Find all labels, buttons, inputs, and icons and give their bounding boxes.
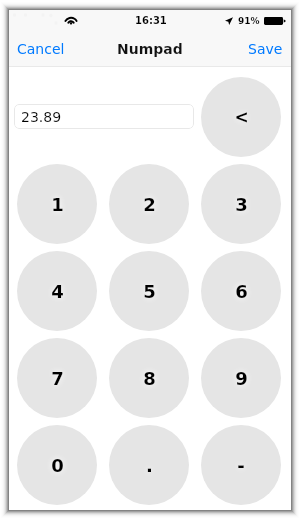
staticText: 9: [235, 368, 248, 389]
button[interactable]: Save: [240, 35, 291, 63]
staticText: 6: [235, 281, 248, 302]
staticText: 7: [51, 368, 64, 389]
button[interactable]: 9: [201, 338, 281, 418]
staticText: Cancel: [17, 41, 65, 57]
button[interactable]: 23.89: [14, 104, 194, 129]
button[interactable]: 4: [17, 251, 97, 331]
staticText: 1: [51, 194, 64, 215]
button[interactable]: 8: [109, 338, 189, 418]
button[interactable]: 7: [17, 338, 97, 418]
button[interactable]: .: [109, 425, 189, 505]
staticText: -: [237, 455, 245, 476]
staticText: Save: [248, 41, 283, 57]
button[interactable]: 6: [201, 251, 281, 331]
staticText: 16:31: [135, 15, 167, 27]
staticText: 23.89: [21, 109, 62, 125]
button[interactable]: 2: [109, 164, 189, 244]
staticText: 0: [51, 455, 64, 476]
button[interactable]: 1: [17, 164, 97, 244]
staticText: Numpad: [117, 41, 183, 57]
staticText: 8: [143, 368, 156, 389]
button[interactable]: -: [201, 425, 281, 505]
button[interactable]: Backspace: [201, 77, 281, 157]
staticText: <: [234, 107, 249, 127]
button[interactable]: Cancel: [9, 35, 73, 63]
button[interactable]: 3: [201, 164, 281, 244]
staticText: 2: [143, 194, 156, 215]
staticText: 4: [51, 281, 64, 302]
staticText: 3: [235, 194, 248, 215]
staticText: 5: [143, 281, 156, 302]
button[interactable]: 0: [17, 425, 97, 505]
button[interactable]: 5: [109, 251, 189, 331]
staticText: 91%: [238, 16, 260, 26]
staticText: .: [146, 455, 153, 476]
